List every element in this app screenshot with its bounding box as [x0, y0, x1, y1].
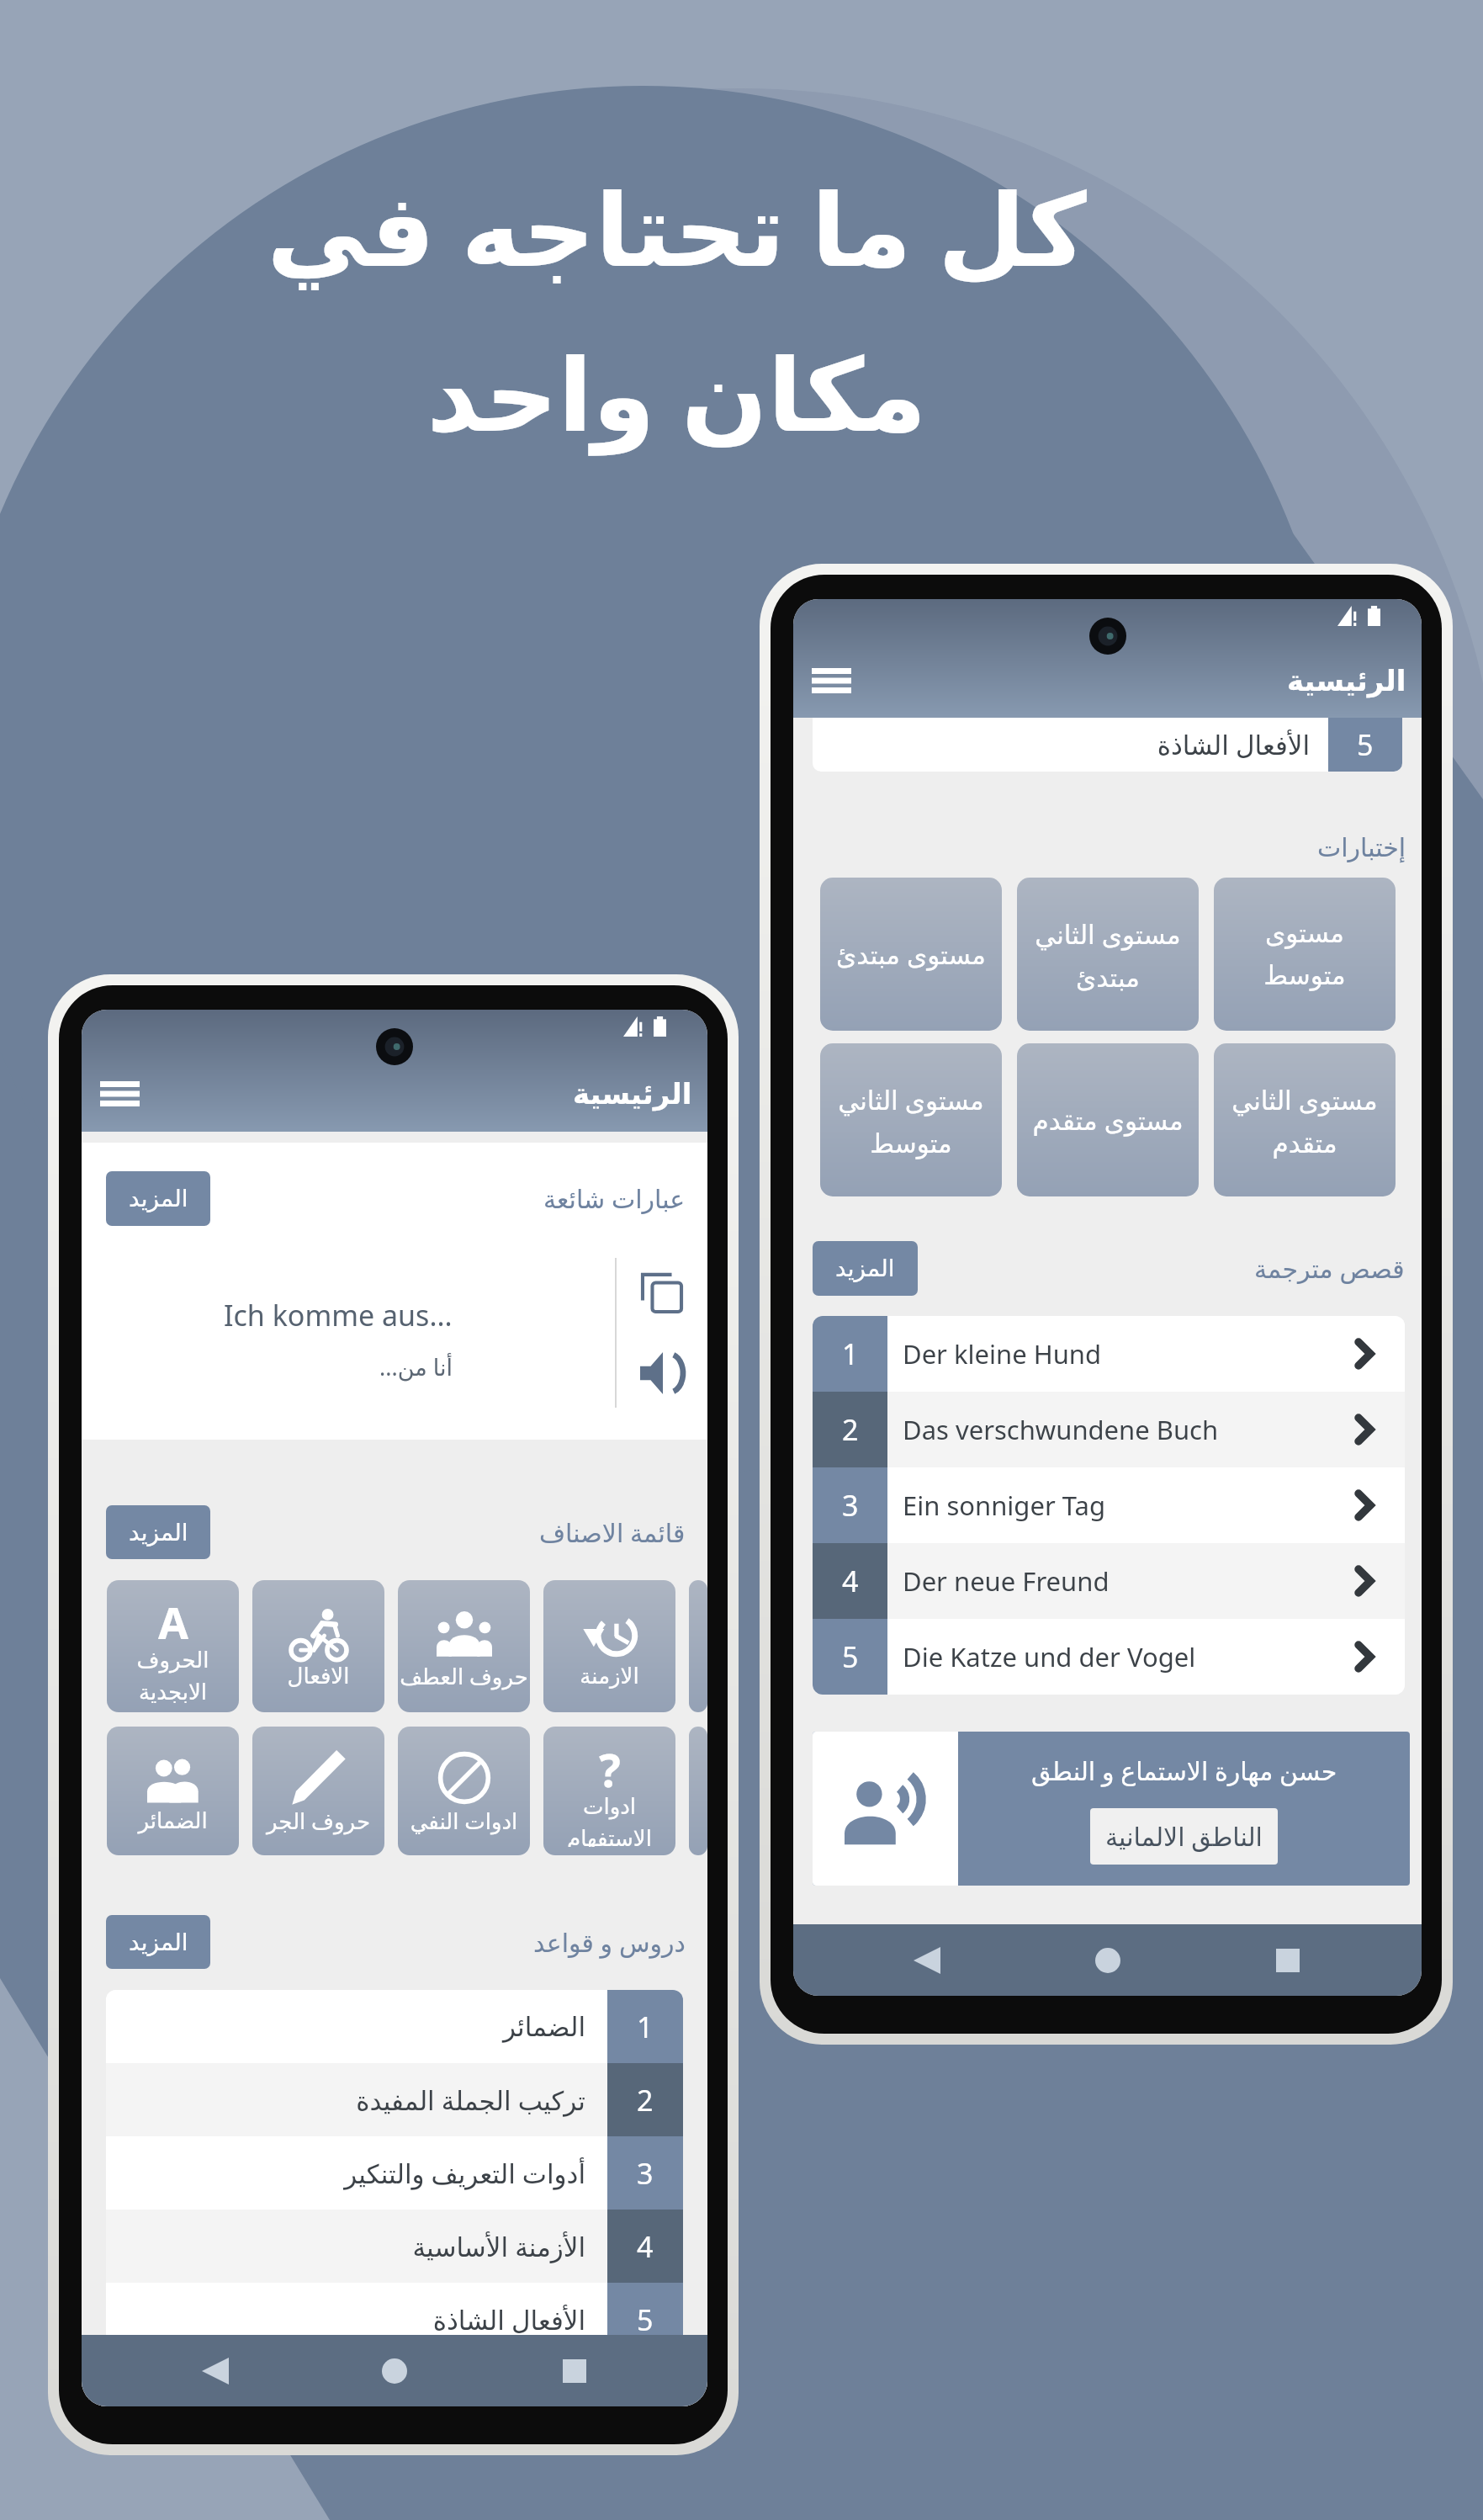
- staticText: ‫أنا من...‬: [379, 1351, 453, 1382]
- staticText: قصص مترجمة: [1254, 1251, 1405, 1286]
- staticText: مستوى الثاني متوسط: [838, 1082, 984, 1159]
- button[interactable]: A: [107, 1580, 239, 1712]
- button[interactable]: الضمائر: [107, 1727, 239, 1855]
- staticText: حروف الجر: [252, 1806, 384, 1835]
- button[interactable]: 3: [813, 1467, 1405, 1543]
- button[interactable]: 1: [813, 1316, 1405, 1392]
- staticText: الأفعال الشاذة: [106, 2302, 585, 2337]
- button[interactable]: مستوى متوسط: [1214, 878, 1396, 1031]
- button[interactable]: حروف الجر: [252, 1727, 384, 1855]
- button[interactable]: المزيد: [106, 1505, 210, 1559]
- button[interactable]: ادوات النفي: [398, 1727, 530, 1855]
- button[interactable]: الناطق الالمانية: [1090, 1808, 1278, 1865]
- staticText: ادوات النفي: [398, 1806, 530, 1835]
- staticText: ?: [599, 1738, 621, 1794]
- staticText: الرئيسية: [573, 1077, 692, 1111]
- button[interactable]: مستوى متقدم: [1017, 1043, 1199, 1196]
- staticText: 4: [842, 1562, 859, 1600]
- staticText: الضمائر: [106, 2012, 585, 2042]
- staticText: الازمنة: [543, 1663, 675, 1689]
- staticText: قائمة الاصناف: [539, 1515, 686, 1550]
- button[interactable]: 2: [813, 1392, 1405, 1467]
- staticText: Das verschwundene Buch: [903, 1412, 1357, 1447]
- staticText: عبارات شائعة: [543, 1181, 686, 1216]
- staticText: المزيد: [129, 1928, 188, 1956]
- staticText: Der kleine Hund: [903, 1336, 1357, 1371]
- staticText: حروف العطف: [398, 1661, 530, 1690]
- button[interactable]: More categories: [689, 1727, 707, 1855]
- button[interactable]: المزيد: [813, 1241, 918, 1296]
- staticText: Der neue Freund: [903, 1563, 1357, 1599]
- button[interactable]: مستوى الثاني متقدم: [1214, 1043, 1396, 1196]
- button[interactable]: Copy: [628, 1259, 696, 1326]
- button[interactable]: الافعال: [252, 1580, 384, 1712]
- staticText: 2: [842, 1410, 859, 1449]
- button[interactable]: الازمنة: [543, 1580, 675, 1712]
- staticText: Ich komme aus...: [224, 1296, 453, 1334]
- staticText: تركيب الجملة المفيدة: [106, 2082, 585, 2118]
- staticText: 2: [637, 2081, 654, 2119]
- staticText: الضمائر: [107, 1808, 239, 1833]
- staticText: الأزمنة الأساسية: [106, 2229, 585, 2264]
- button[interactable]: Menu: [93, 1068, 146, 1120]
- staticText: 1: [842, 1334, 859, 1373]
- button[interactable]: الأفعال الشاذة: [106, 2283, 683, 2356]
- staticText: 3: [637, 2154, 654, 2193]
- staticText: ادوات الاستفهام: [543, 1794, 675, 1847]
- button[interactable]: Recents: [1242, 1924, 1334, 1996]
- button[interactable]: المزيد: [106, 1171, 210, 1226]
- staticText: الافعال: [252, 1663, 384, 1689]
- staticText: Ein sonniger Tag: [903, 1488, 1357, 1523]
- staticText: أدوات التعريف والتنكير: [106, 2156, 585, 2191]
- staticText: الرئيسية: [1287, 664, 1406, 698]
- button[interactable]: 4: [813, 1543, 1405, 1619]
- staticText: دروس و قواعد: [533, 1925, 686, 1960]
- button[interactable]: الضمائر: [106, 1990, 683, 2063]
- staticText: كل ما تحتاجه في: [267, 158, 1087, 295]
- button[interactable]: Menu: [805, 655, 857, 707]
- staticText: 5: [637, 2300, 654, 2339]
- button[interactable]: الأزمنة الأساسية: [106, 2210, 683, 2283]
- button[interactable]: Back: [881, 1924, 973, 1996]
- button[interactable]: More categories: [689, 1580, 707, 1712]
- button[interactable]: ?: [543, 1727, 675, 1855]
- staticText: الحروف الابجدية: [107, 1647, 239, 1704]
- staticText: 4: [637, 2227, 654, 2266]
- staticText: 3: [842, 1486, 859, 1525]
- staticText: الناطق الالمانية: [1105, 1819, 1263, 1854]
- staticText: A: [158, 1592, 188, 1647]
- staticText: مستوى متوسط: [1263, 918, 1346, 990]
- button[interactable]: حروف العطف: [398, 1580, 530, 1712]
- button[interactable]: تركيب الجملة المفيدة: [106, 2063, 683, 2136]
- button[interactable]: أدوات التعريف والتنكير: [106, 2136, 683, 2210]
- button[interactable]: الأفعال الشاذة: [813, 718, 1402, 772]
- button[interactable]: مستوى الثاني متوسط: [820, 1043, 1002, 1196]
- staticText: Die Katze und der Vogel: [903, 1639, 1357, 1674]
- staticText: مكان واحد: [426, 323, 927, 460]
- button[interactable]: مستوى الثاني مبتدئ: [1017, 878, 1199, 1031]
- staticText: 1: [637, 2008, 654, 2046]
- button[interactable]: Home: [1062, 1924, 1154, 1996]
- button[interactable]: المزيد: [106, 1915, 210, 1969]
- staticText: 5: [1357, 725, 1374, 764]
- staticText: المزيد: [129, 1519, 188, 1546]
- staticText: حسن مهارة الاستماع و النطق: [1031, 1753, 1337, 1788]
- staticText: 5: [842, 1637, 859, 1676]
- button[interactable]: مستوى مبتدئ: [820, 878, 1002, 1031]
- staticText: مستوى متقدم: [1032, 1102, 1184, 1138]
- staticText: مستوى الثاني متقدم: [1231, 1082, 1378, 1159]
- button[interactable]: Back: [169, 2335, 262, 2406]
- staticText: المزيد: [129, 1185, 188, 1212]
- staticText: المزيد: [835, 1255, 895, 1282]
- button[interactable]: 5: [813, 1619, 1405, 1695]
- button[interactable]: Home: [348, 2335, 441, 2406]
- staticText: مستوى مبتدئ: [836, 936, 986, 972]
- staticText: إختبارات: [1317, 833, 1406, 862]
- staticText: مستوى الثاني مبتدئ: [1035, 916, 1181, 993]
- button[interactable]: حسن مهارة الاستماع و النطق: [813, 1732, 1410, 1886]
- button[interactable]: Play sound: [628, 1340, 696, 1407]
- staticText: الأفعال الشاذة: [813, 727, 1310, 762]
- button[interactable]: Recents: [528, 2335, 621, 2406]
